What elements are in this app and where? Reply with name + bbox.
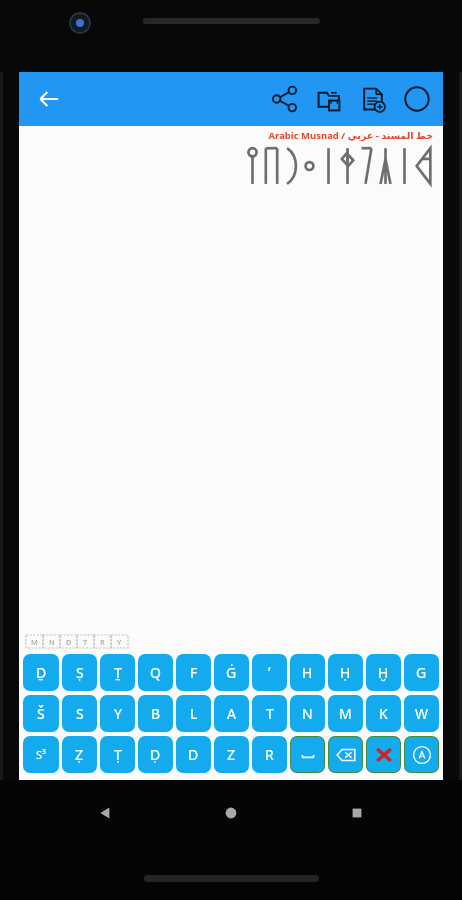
button[interactable]: Ḍ xyxy=(138,736,173,773)
staticText: Š xyxy=(37,704,45,723)
staticText: F xyxy=(190,663,198,682)
staticText: H xyxy=(302,663,313,682)
staticText: Ḫ xyxy=(378,663,389,682)
staticText: B xyxy=(151,704,161,723)
button[interactable]: Back xyxy=(29,79,69,119)
button[interactable]: Ḏ xyxy=(23,654,59,691)
button[interactable]: New document xyxy=(351,77,395,121)
button[interactable]: R xyxy=(252,736,287,773)
staticText: T xyxy=(266,704,274,723)
button[interactable]: H xyxy=(290,654,325,691)
button[interactable]: K xyxy=(366,695,401,732)
button[interactable]: Recents xyxy=(336,792,378,834)
button[interactable]: D xyxy=(176,736,211,773)
button[interactable]: S xyxy=(62,695,97,732)
staticText: Y xyxy=(117,637,122,647)
button[interactable]: Š xyxy=(23,695,59,732)
button[interactable]: S³ xyxy=(23,736,59,773)
staticText: S³ xyxy=(36,747,46,762)
button[interactable]: M xyxy=(328,695,363,732)
staticText: Y xyxy=(114,704,122,723)
button[interactable]: Q xyxy=(138,654,173,691)
button[interactable]: W xyxy=(404,695,439,732)
button[interactable]: Ṣ xyxy=(62,654,97,691)
button[interactable]: T xyxy=(252,695,287,732)
staticText: Q xyxy=(150,663,161,682)
staticText: Ṭ xyxy=(114,745,122,764)
staticText: K xyxy=(379,704,388,723)
button[interactable]: Latin mode xyxy=(405,737,438,772)
button[interactable]: Y xyxy=(100,695,135,732)
button[interactable]: A xyxy=(214,695,249,732)
staticText: Arabic Musnad / خط المسند - عربي xyxy=(268,129,433,142)
button[interactable]: G xyxy=(404,654,439,691)
button[interactable]: Help xyxy=(395,77,439,121)
button[interactable]: Clear xyxy=(367,737,400,772)
staticText: A xyxy=(227,704,236,723)
staticText: M xyxy=(31,637,38,647)
button[interactable]: B xyxy=(138,695,173,732)
button[interactable]: Z xyxy=(214,736,249,773)
button[interactable]: F xyxy=(176,654,211,691)
button[interactable]: Ṭ xyxy=(100,736,135,773)
staticText: Ḍ xyxy=(150,745,161,764)
staticText: S xyxy=(76,704,84,723)
button[interactable]: Open folder xyxy=(307,77,351,121)
staticText: D xyxy=(66,637,72,647)
staticText: N xyxy=(49,637,55,647)
staticText: Ẓ xyxy=(75,745,84,764)
staticText: M xyxy=(339,704,352,723)
staticText: ʼ xyxy=(268,663,271,682)
button[interactable]: N xyxy=(290,695,325,732)
staticText: Ġ xyxy=(226,663,237,682)
staticText: G xyxy=(416,663,427,682)
button[interactable]: Ḫ xyxy=(366,654,401,691)
staticText: Ḏ xyxy=(36,663,47,682)
button[interactable]: Ẓ xyxy=(62,736,97,773)
staticText: R xyxy=(265,745,274,764)
staticText: T xyxy=(83,637,88,647)
staticText: W xyxy=(415,704,429,723)
staticText: Ṣ xyxy=(76,663,84,682)
staticText: N xyxy=(302,704,313,723)
button[interactable]: Ġ xyxy=(214,654,249,691)
staticText: Ḥ xyxy=(340,663,351,682)
button[interactable]: ʼ xyxy=(252,654,287,691)
button[interactable]: Home xyxy=(210,792,252,834)
staticText: D xyxy=(188,745,199,764)
staticText: Z xyxy=(227,745,236,764)
staticText: Ṯ xyxy=(114,663,122,682)
button[interactable]: Space xyxy=(291,737,324,772)
button[interactable]: Back xyxy=(84,792,126,834)
button[interactable]: Share xyxy=(263,77,307,121)
button[interactable]: Backspace xyxy=(329,737,362,772)
staticText: R xyxy=(100,637,105,647)
button[interactable]: Ṯ xyxy=(100,654,135,691)
button[interactable]: L xyxy=(176,695,211,732)
button[interactable]: Ḥ xyxy=(328,654,363,691)
staticText: L xyxy=(190,704,198,723)
